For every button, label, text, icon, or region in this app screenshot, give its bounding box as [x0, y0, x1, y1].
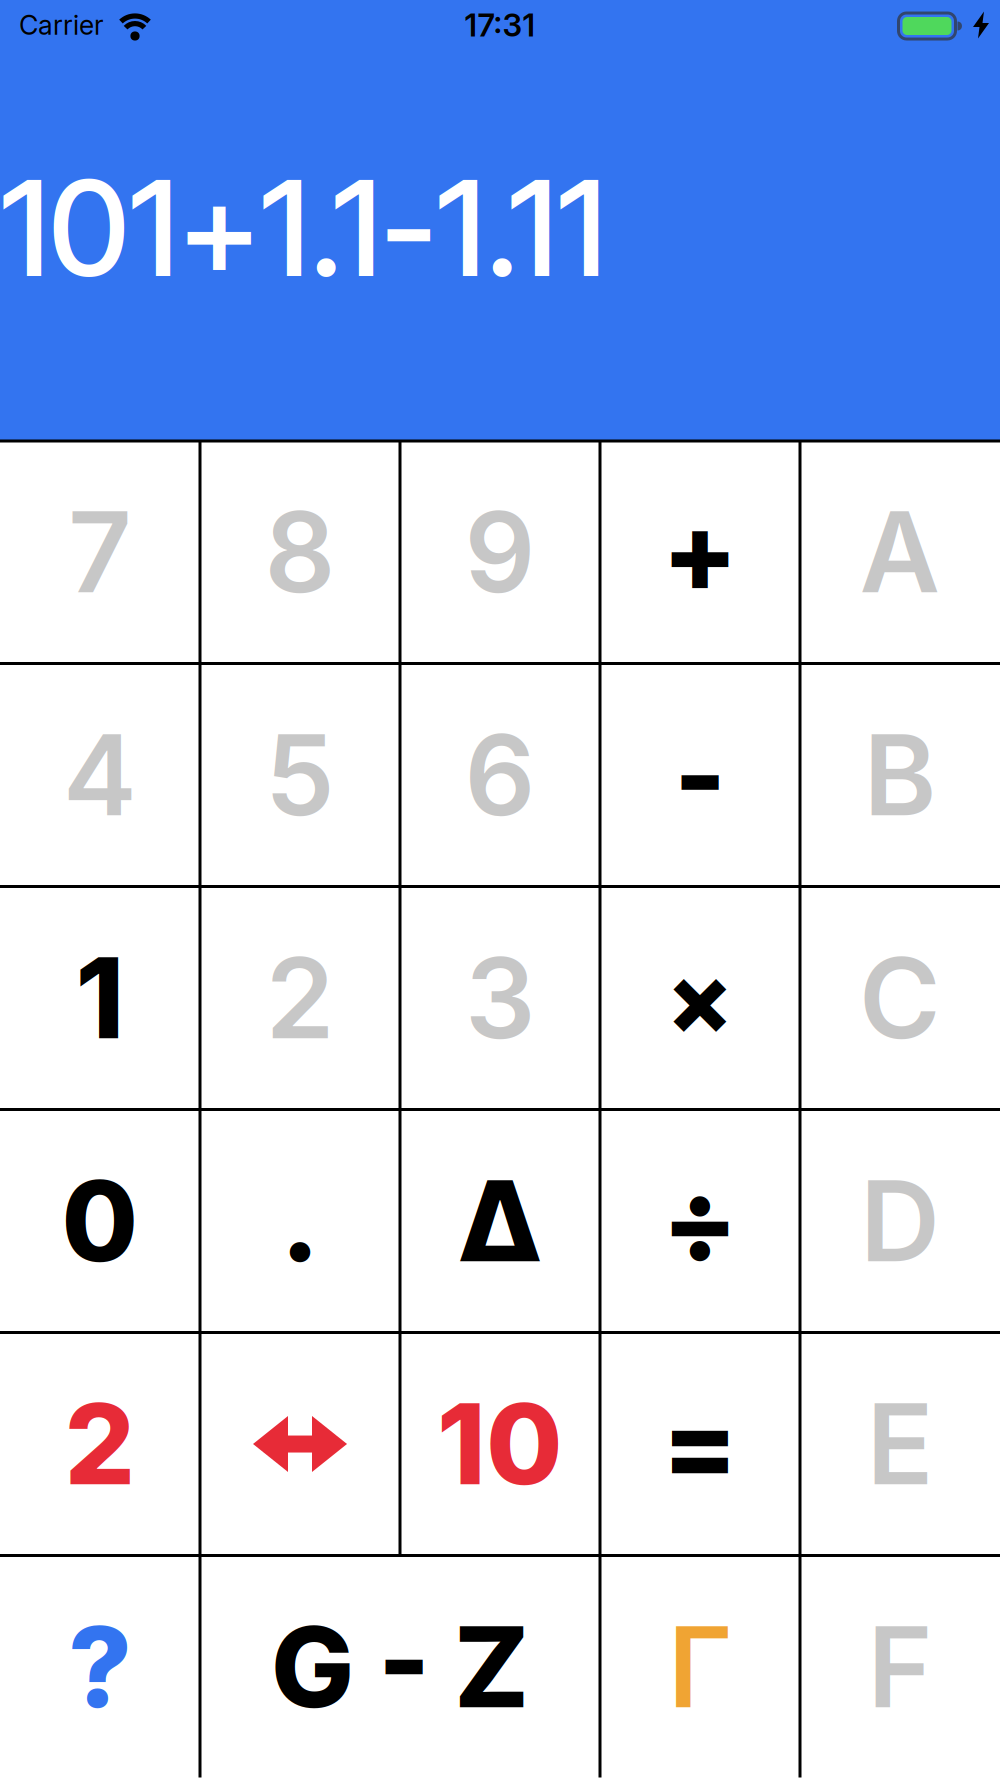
staticText: 1 — [75, 931, 124, 1065]
staticText: 2 — [265, 931, 334, 1065]
button[interactable]: B — [800, 663, 1000, 886]
staticText: - — [674, 708, 726, 842]
staticText: F — [867, 1600, 932, 1734]
button[interactable]: ÷ — [600, 1109, 800, 1332]
button[interactable]: A — [800, 440, 1000, 663]
button[interactable]: . — [200, 1109, 400, 1332]
staticText: 4 — [63, 708, 137, 842]
staticText: + — [662, 485, 738, 619]
staticText: 17:31 — [464, 6, 535, 44]
staticText: A — [859, 485, 940, 619]
staticText: 10 — [437, 1377, 563, 1511]
staticText: 6 — [464, 708, 535, 842]
button[interactable]: 6 — [400, 663, 600, 886]
staticText: 5 — [265, 708, 335, 842]
button[interactable]: 5 — [200, 663, 400, 886]
button[interactable]: - — [600, 663, 800, 886]
button[interactable]: 9 — [400, 440, 600, 663]
button[interactable]: 10 — [400, 1332, 600, 1555]
button[interactable] — [200, 1332, 400, 1555]
staticText: 3 — [465, 931, 535, 1065]
button[interactable]: 2 — [200, 886, 400, 1109]
staticText: ÷ — [662, 1154, 738, 1288]
staticText: E — [866, 1377, 933, 1511]
button[interactable]: Γ — [600, 1555, 800, 1778]
staticText: Δ — [457, 1154, 542, 1288]
staticText: 9 — [464, 485, 535, 619]
staticText: D — [860, 1154, 940, 1288]
button[interactable]: 2 — [0, 1332, 200, 1555]
staticText: B — [863, 708, 936, 842]
staticText: . — [280, 1154, 319, 1288]
button[interactable]: 8 — [200, 440, 400, 663]
button[interactable]: 7 — [0, 440, 200, 663]
button[interactable]: C — [800, 886, 1000, 1109]
staticText: ? — [68, 1600, 132, 1734]
button[interactable]: G - Z — [200, 1555, 600, 1778]
staticText: Γ — [668, 1600, 732, 1734]
button[interactable]: × — [600, 886, 800, 1109]
button[interactable]: 4 — [0, 663, 200, 886]
button[interactable]: 0 — [0, 1109, 200, 1332]
staticText: 2 — [64, 1377, 135, 1511]
staticText: 0 — [61, 1154, 138, 1288]
staticText: 7 — [68, 485, 132, 619]
button[interactable]: 3 — [400, 886, 600, 1109]
button[interactable]: F — [800, 1555, 1000, 1778]
button[interactable]: Δ — [400, 1109, 600, 1332]
staticText: × — [666, 938, 734, 1058]
staticText: 101+1.1-1.11 — [0, 148, 606, 308]
button[interactable]: = — [600, 1332, 800, 1555]
button[interactable]: 1 — [0, 886, 200, 1109]
staticText: 8 — [264, 485, 335, 619]
staticText: C — [859, 931, 941, 1065]
staticText: G - Z — [271, 1600, 529, 1734]
button[interactable]: + — [600, 440, 800, 663]
button[interactable]: ? — [0, 1555, 200, 1778]
button[interactable]: D — [800, 1109, 1000, 1332]
staticText: Carrier — [19, 9, 104, 41]
staticText: = — [662, 1377, 738, 1511]
button[interactable]: E — [800, 1332, 1000, 1555]
